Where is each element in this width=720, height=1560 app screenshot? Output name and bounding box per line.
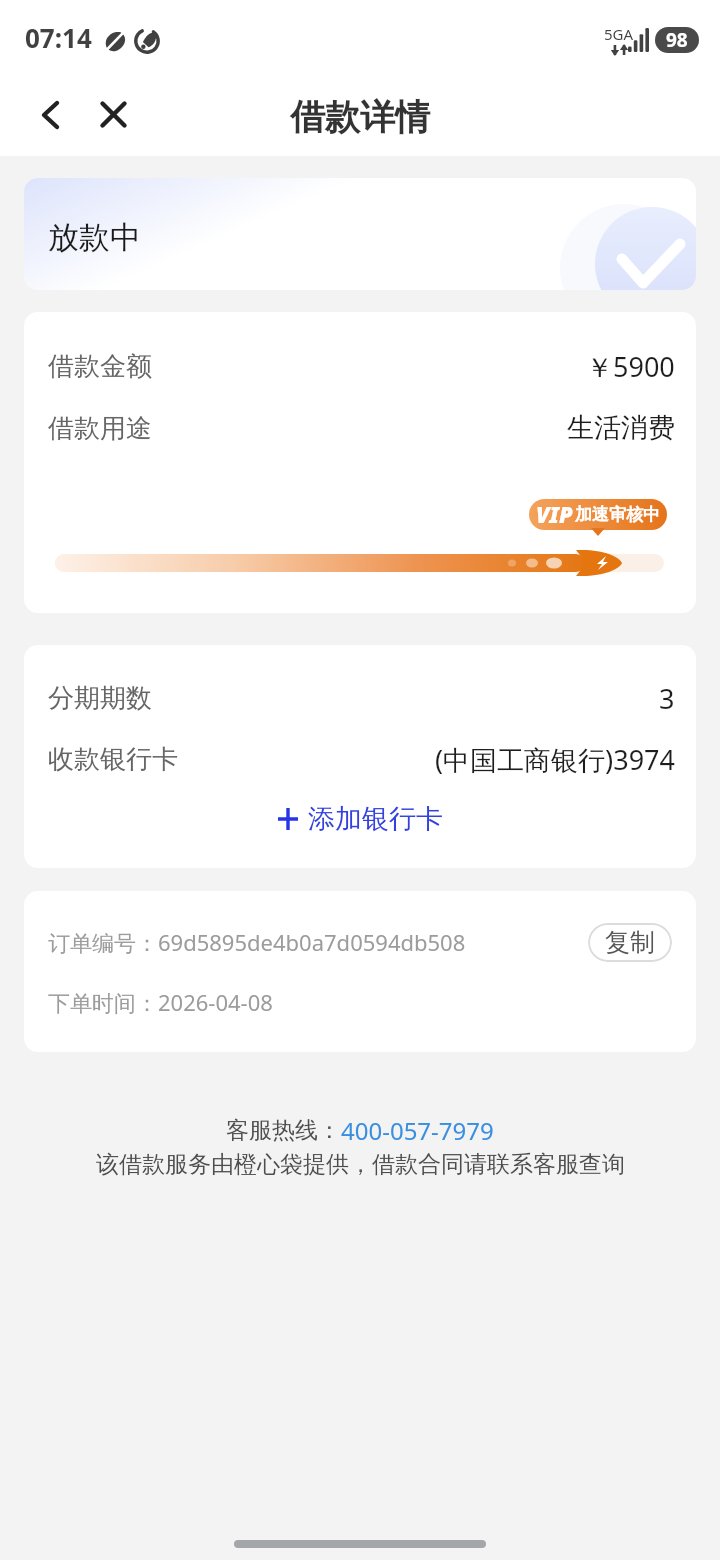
- button[interactable]: Back: [12, 78, 86, 152]
- staticText: 借款详情: [290, 95, 430, 139]
- staticText: 下单时间：2026-04-08: [48, 987, 273, 1017]
- staticText: 客服热线：: [226, 1116, 341, 1145]
- staticText: 加速审核中: [575, 504, 660, 525]
- button[interactable]: Close: [76, 78, 150, 152]
- staticText: VIP: [536, 499, 573, 529]
- staticText: 分期期数: [48, 682, 152, 715]
- button[interactable]: 添加银行卡: [24, 790, 696, 848]
- staticText: 放款中: [48, 218, 141, 257]
- staticText: 收款银行卡: [48, 743, 178, 776]
- staticText: 5GA: [604, 24, 634, 44]
- staticText: 98: [666, 27, 688, 53]
- button[interactable]: 复制: [588, 923, 672, 962]
- staticText: 添加银行卡: [308, 802, 443, 836]
- staticText: 3: [659, 680, 675, 717]
- staticText: 借款金额: [48, 350, 152, 383]
- staticText: ￥5900: [586, 348, 675, 385]
- staticText: 生活消费: [567, 411, 675, 445]
- button[interactable]: 400-057-7979: [341, 1114, 494, 1147]
- staticText: 该借款服务由橙心袋提供，借款合同请联系客服查询: [96, 1150, 625, 1179]
- staticText: 复制: [605, 927, 655, 958]
- staticText: 借款用途: [48, 412, 152, 445]
- staticText: 07:14: [25, 20, 92, 55]
- staticText: (中国工商银行)3974: [435, 741, 675, 778]
- staticText: 订单编号：69d5895de4b0a7d0594db508: [48, 927, 466, 957]
